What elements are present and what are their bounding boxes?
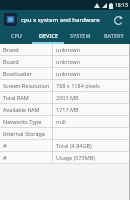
staticText [56, 130, 130, 137]
button[interactable]: DEVICE [32, 29, 64, 42]
staticText: null [56, 118, 130, 125]
staticText: CPU [11, 32, 22, 39]
staticText: BATERY [104, 32, 124, 39]
button[interactable]: Total RAM [0, 92, 130, 103]
button[interactable]: Screen Resolution [0, 80, 130, 91]
staticText: cpu x system and hardware [21, 16, 110, 24]
staticText: 18:13 [115, 2, 128, 9]
staticText: Total RAM [3, 94, 52, 101]
staticText: 768 x 1184 pixels [56, 82, 130, 89]
staticText: SYSTEM [70, 32, 91, 39]
button[interactable]: Internal Storage [0, 128, 130, 139]
staticText: Board [3, 58, 52, 65]
button[interactable]: Available RAM [0, 104, 130, 115]
staticText: Usage (573MB) [56, 154, 130, 161]
button[interactable]: CPU [0, 29, 32, 42]
staticText: Networks Type [3, 118, 52, 125]
staticText: Total (4.84GB) [56, 142, 130, 149]
button[interactable]: BATERY [97, 29, 130, 42]
button[interactable]: Networks Type [0, 116, 130, 127]
staticText: # [3, 154, 52, 161]
staticText: Internal Storage [3, 130, 52, 137]
staticText: Screen Resolution [3, 82, 52, 89]
staticText: Brand [3, 46, 52, 53]
button[interactable]: # [0, 140, 130, 151]
button[interactable]: # [0, 152, 130, 163]
staticText: Bootloader [3, 70, 52, 77]
staticText: unknown [56, 46, 130, 53]
staticText: unknown [56, 58, 130, 65]
button[interactable]: Brand [0, 44, 130, 55]
staticText: Available RAM [3, 106, 52, 113]
button[interactable]: Refresh [110, 12, 126, 28]
staticText: 2003 MB [56, 94, 130, 101]
button[interactable]: Board [0, 56, 130, 67]
button[interactable]: Bootloader [0, 68, 130, 79]
button[interactable]: SYSTEM [64, 29, 97, 42]
staticText: 1717 MB [56, 106, 130, 113]
staticText: # [3, 142, 52, 149]
staticText: unknown [56, 70, 130, 77]
staticText: DEVICE [39, 32, 58, 39]
